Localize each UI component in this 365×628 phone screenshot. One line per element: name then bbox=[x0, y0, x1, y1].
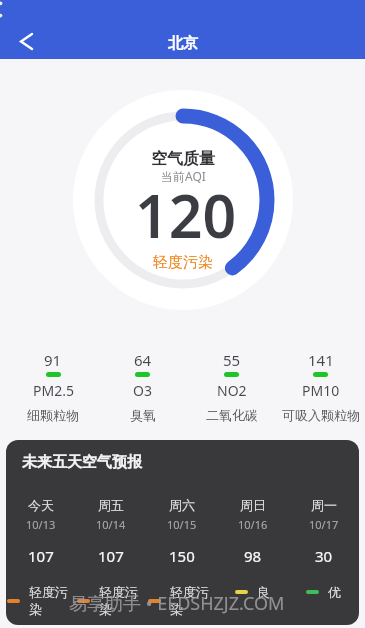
staticText: 107 bbox=[98, 546, 124, 566]
staticText: 141 bbox=[308, 350, 334, 370]
staticText: 10/13 bbox=[26, 517, 56, 532]
staticText: 91 bbox=[44, 350, 62, 370]
staticText: 易享助手 • EEDSHZJZ.COM bbox=[69, 591, 285, 616]
staticText: O3 bbox=[133, 381, 152, 400]
staticText: 55 bbox=[223, 350, 241, 370]
staticText: 30 bbox=[315, 546, 333, 566]
button[interactable]: 未来五天空气预报 bbox=[6, 440, 359, 625]
staticText: 周五 bbox=[98, 497, 124, 513]
staticText: 10/16 bbox=[238, 517, 268, 532]
staticText: 空气质量 bbox=[151, 149, 215, 169]
staticText: 120 bbox=[135, 175, 237, 255]
staticText: 当前AQI bbox=[161, 168, 206, 184]
staticText: 周日 bbox=[240, 497, 266, 513]
staticText: 臭氧 bbox=[130, 407, 156, 423]
staticText: 107 bbox=[28, 546, 54, 566]
staticText: 10/15 bbox=[167, 517, 197, 532]
staticText: 周一 bbox=[311, 497, 337, 513]
staticText: 今天 bbox=[28, 497, 54, 513]
staticText: 64 bbox=[134, 350, 152, 370]
staticText: 10/17 bbox=[309, 517, 339, 532]
staticText: 未来五天空气预报 bbox=[22, 453, 142, 472]
staticText: 98 bbox=[244, 546, 262, 566]
staticText: 周六 bbox=[169, 497, 195, 513]
staticText: 轻度污染 bbox=[29, 584, 75, 618]
staticText: 二氧化碳 bbox=[206, 407, 258, 423]
staticText: PM10 bbox=[302, 381, 340, 400]
staticText: 10/14 bbox=[96, 517, 126, 532]
staticText: 北京 bbox=[168, 34, 198, 53]
staticText: 细颗粒物 bbox=[27, 407, 79, 423]
staticText: 轻度污染 bbox=[153, 253, 213, 272]
staticText: 150 bbox=[169, 546, 195, 566]
staticText: NO2 bbox=[217, 381, 247, 400]
staticText: 轻度污染 bbox=[99, 584, 145, 618]
button[interactable] bbox=[0, 23, 52, 59]
staticText: 良 bbox=[257, 584, 270, 600]
staticText: PM2.5 bbox=[33, 381, 74, 400]
staticText: 优 bbox=[328, 584, 341, 600]
staticText: 轻度污染 bbox=[170, 584, 216, 618]
staticText: 可吸入颗粒物 bbox=[282, 407, 360, 423]
